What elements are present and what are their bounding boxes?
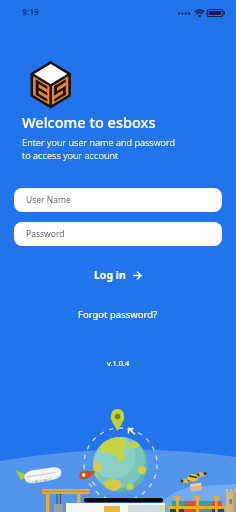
staticText: Forgot password? xyxy=(78,308,158,321)
staticText: Welcome to esboxs xyxy=(22,112,156,132)
staticText: 9:19 xyxy=(22,6,39,18)
button[interactable]: User Name xyxy=(14,188,222,212)
button[interactable]: Log in xyxy=(53,261,183,289)
staticText: User Name xyxy=(26,194,71,206)
staticText: v.1.0.4 xyxy=(107,358,130,368)
button[interactable]: Forgot password? xyxy=(78,304,158,324)
button[interactable]: Password xyxy=(14,222,222,246)
staticText: Enter your user name and password to acc… xyxy=(22,136,176,162)
staticText: Log in xyxy=(94,268,126,282)
staticText: Password xyxy=(26,228,65,240)
